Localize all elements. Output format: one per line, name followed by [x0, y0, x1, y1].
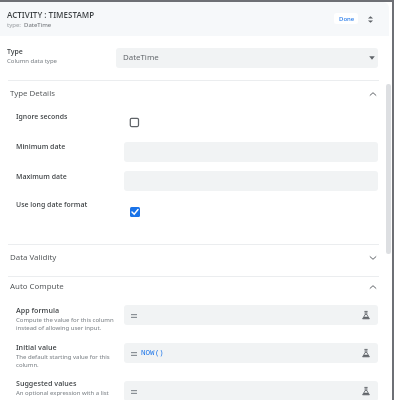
staticText: DateTime: [123, 52, 159, 63]
staticText: type:: [7, 21, 21, 29]
staticText: NOW(): [141, 347, 164, 357]
other: Expand: [368, 253, 378, 263]
other: Collapse: [368, 89, 378, 99]
staticText: Type Details: [10, 88, 55, 99]
staticText: Compute the value for this column instea…: [16, 316, 114, 332]
staticText: Suggested values: [16, 378, 77, 388]
button[interactable]: NOW(): [124, 343, 378, 363]
staticText: Done: [339, 15, 355, 23]
button[interactable]: DateTime: [116, 48, 378, 68]
button[interactable]: Ignore seconds: [129, 117, 141, 129]
button[interactable]: Type Details: [0, 87, 389, 111]
button[interactable]: [124, 305, 378, 325]
staticText: App formula: [16, 305, 60, 315]
staticText: Ignore seconds: [16, 112, 68, 121]
staticText: Minimum date: [16, 142, 66, 151]
other: Open type menu: [367, 53, 377, 63]
staticText: Use long date format: [16, 200, 88, 209]
button[interactable]: [124, 381, 378, 400]
button[interactable]: More options: [364, 13, 377, 26]
staticText: Type: [7, 47, 23, 56]
button[interactable]: Auto Compute: [0, 280, 389, 304]
other: Collapse: [368, 282, 378, 292]
staticText: An optional expression with a list: [16, 389, 109, 397]
staticText: Initial value: [16, 342, 57, 352]
staticText: Maximum date: [16, 172, 67, 181]
button[interactable]: Use long date format: [130, 207, 140, 217]
staticText: Auto Compute: [10, 281, 64, 292]
staticText: Data Validity: [10, 252, 57, 263]
staticText: The default starting value for this colu…: [16, 353, 110, 369]
staticText: DateTime: [24, 21, 52, 29]
button[interactable]: Data Validity: [0, 251, 389, 275]
staticText: ACTIVITY : TIMESTAMP: [7, 9, 95, 20]
button[interactable]: Done: [334, 13, 358, 24]
staticText: Column data type: [7, 57, 58, 65]
